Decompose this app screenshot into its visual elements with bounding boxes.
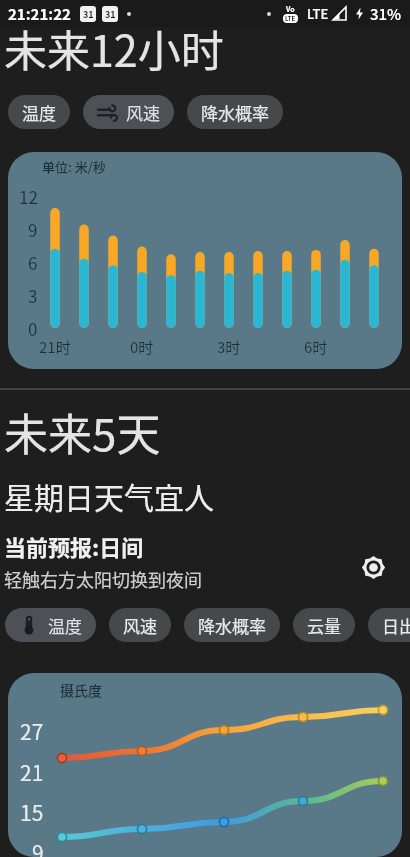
staticText: 21时	[39, 336, 71, 358]
button[interactable]: 温度	[5, 608, 96, 642]
staticText: 27	[20, 716, 44, 746]
button[interactable]: 风速	[83, 95, 174, 129]
staticText: 0	[28, 316, 38, 341]
staticText: 6时	[304, 336, 328, 358]
staticText: 风速	[123, 613, 157, 638]
staticText: 6	[28, 250, 38, 275]
staticText: 未来12小时	[4, 17, 224, 79]
staticText: 温度	[22, 100, 56, 125]
staticText: 降水概率	[198, 613, 266, 638]
staticText: 单位: 米/秒	[42, 157, 106, 176]
staticText: 15	[20, 797, 44, 827]
staticText: 摄氏度	[60, 680, 102, 700]
staticText: 0时	[130, 336, 154, 358]
button[interactable]: 降水概率	[184, 608, 280, 642]
staticText: 31%	[370, 3, 402, 25]
staticText: 未来5天	[4, 400, 161, 458]
button[interactable]: 温度	[8, 95, 70, 129]
button[interactable]	[360, 554, 387, 581]
staticText: 日出日落	[382, 613, 410, 638]
staticText: 轻触右方太阳切换到夜间	[4, 566, 202, 592]
staticText: 21	[20, 757, 44, 787]
button[interactable]: 单位: 米/秒	[8, 152, 402, 369]
staticText: 3	[28, 283, 38, 308]
button[interactable]: 风速	[109, 608, 171, 642]
staticText: 31	[105, 8, 116, 21]
staticText: 当前预报:日间	[4, 530, 144, 562]
staticText: 12	[19, 184, 38, 209]
staticText: 降水概率	[201, 100, 269, 125]
staticText: 31	[83, 8, 94, 21]
staticText: 星期日天气宜人	[4, 474, 214, 517]
staticText: LTE	[307, 4, 329, 23]
staticText: Vo	[286, 4, 295, 14]
staticText: 21:21:22	[8, 3, 71, 25]
staticText: 风速	[126, 100, 160, 125]
button[interactable]: 摄氏度	[8, 673, 402, 857]
staticText: 3时	[217, 336, 241, 358]
button[interactable]: 云量	[293, 608, 355, 642]
staticText: 云量	[307, 613, 341, 638]
staticText: LTE	[285, 14, 296, 23]
staticText: 温度	[48, 613, 82, 638]
button[interactable]: 降水概率	[187, 95, 283, 129]
button[interactable]: 日出日落	[368, 608, 410, 642]
staticText: 9	[28, 217, 38, 242]
staticText: 9	[32, 837, 44, 857]
